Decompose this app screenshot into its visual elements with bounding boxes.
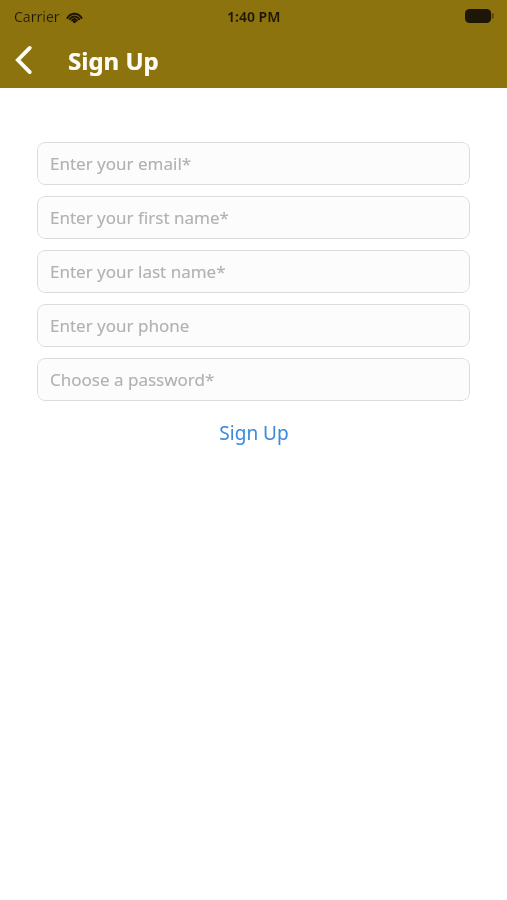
staticText: Enter your phone [50,314,190,337]
staticText: 1:40 PM [227,7,281,26]
button[interactable]: Enter your phone [37,304,470,347]
staticText: Enter your email* [50,152,192,175]
staticText: Choose a password* [50,368,215,391]
button[interactable]: Sign Up [0,420,507,446]
staticText: Sign Up [219,420,289,446]
button[interactable]: Choose a password* [37,358,470,401]
button[interactable]: Back [0,36,48,84]
button[interactable]: Enter your email* [37,142,470,185]
button[interactable]: Enter your first name* [37,196,470,239]
staticText: Sign Up [68,44,159,77]
staticText: Enter your first name* [50,206,229,229]
staticText: Carrier [14,7,60,26]
button[interactable]: Enter your last name* [37,250,470,293]
staticText: Enter your last name* [50,260,226,283]
